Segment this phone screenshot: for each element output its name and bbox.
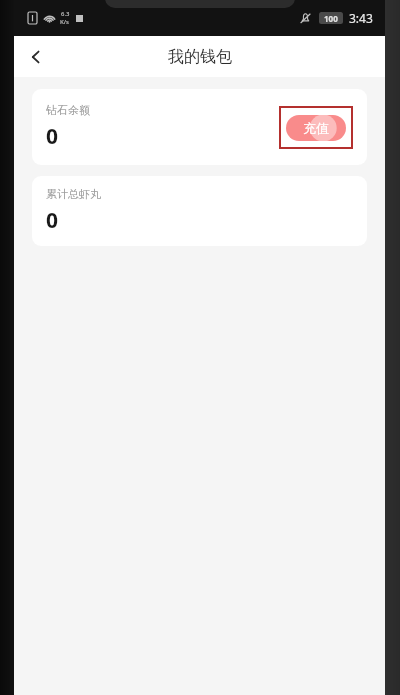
staticText: 100 xyxy=(324,13,338,24)
staticText: 6.3 xyxy=(61,10,70,18)
staticText: 累计总虾丸 xyxy=(46,187,101,201)
button[interactable]: 累计总虾丸 xyxy=(32,176,367,246)
staticText: 3:43 xyxy=(349,10,373,26)
staticText: 我的钱包 xyxy=(168,47,232,67)
button[interactable]: 充值 xyxy=(286,115,346,141)
staticText: 钻石余额 xyxy=(46,103,90,117)
staticText: K/s xyxy=(60,18,70,26)
staticText: 0 xyxy=(46,122,59,151)
button[interactable]: 钻石余额 xyxy=(32,89,367,165)
staticText: 0 xyxy=(46,206,59,235)
button[interactable]: 返回 xyxy=(14,36,58,77)
staticText: 充值 xyxy=(303,120,329,136)
